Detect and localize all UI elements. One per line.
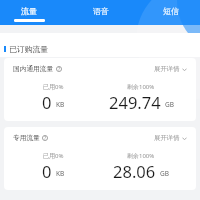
button[interactable]: 流量 [6, 0, 52, 25]
button[interactable]: 专用流量 [4, 127, 196, 190]
button[interactable]: 国内通用流量 [4, 58, 196, 121]
staticText: 剩余100% [127, 83, 155, 91]
staticText: 已订购流量 [9, 44, 48, 54]
staticText: ? [58, 66, 61, 72]
staticText: GB [165, 100, 174, 109]
staticText: 国内通用流量 [13, 65, 54, 73]
staticText: 语音 [93, 6, 109, 16]
staticText: 展开详情 [154, 65, 180, 73]
staticText: ? [44, 135, 47, 141]
staticText: 0 [42, 160, 52, 182]
button[interactable]: 语音 [78, 0, 124, 25]
staticText: 28.06 [113, 160, 156, 182]
staticText: 短信 [163, 6, 179, 16]
staticText: 249.74 [109, 91, 161, 113]
staticText: GB [160, 169, 169, 178]
staticText: KB [56, 100, 65, 109]
staticText: 0 [42, 91, 52, 113]
staticText: 展开详情 [154, 134, 180, 142]
button[interactable]: 帮助 [56, 66, 62, 72]
staticText: 已用0% [43, 152, 64, 160]
staticText: 专用流量 [13, 134, 40, 142]
button[interactable]: 帮助 [42, 135, 48, 141]
staticText: 已用0% [43, 83, 64, 91]
button[interactable]: 短信 [148, 0, 194, 25]
staticText: 流量 [21, 6, 37, 16]
staticText: 剩余100% [127, 152, 155, 160]
staticText: KB [56, 169, 65, 178]
